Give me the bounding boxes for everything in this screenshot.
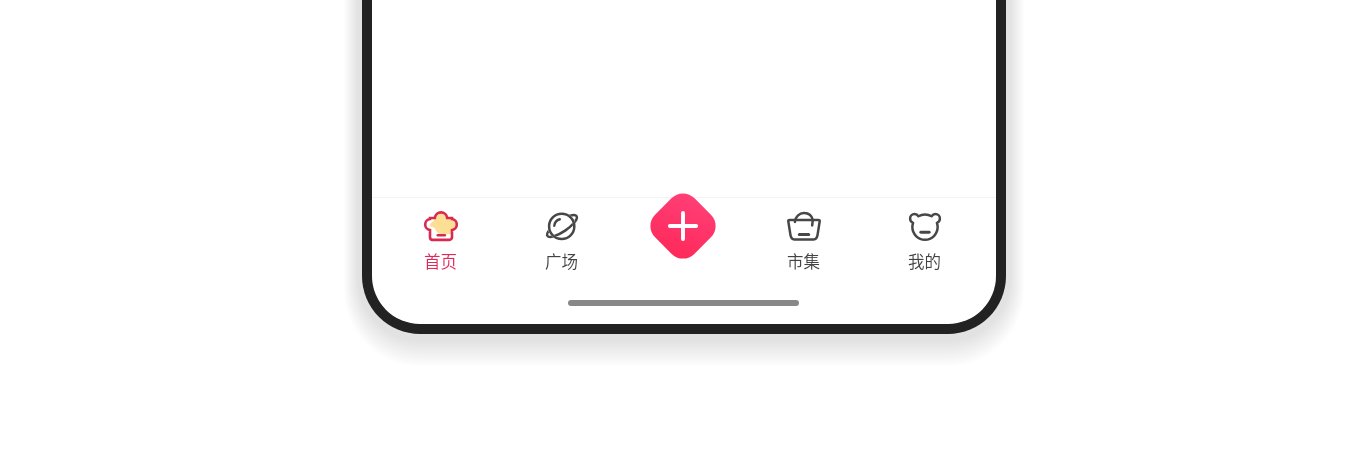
button[interactable]: 广场 bbox=[501, 198, 622, 273]
staticText: 市集 bbox=[787, 249, 820, 273]
staticText: 我的 bbox=[908, 249, 941, 273]
button[interactable]: 首页 bbox=[380, 198, 501, 273]
button[interactable]: 市集 bbox=[743, 198, 864, 273]
button[interactable]: 我的 bbox=[864, 198, 985, 273]
button[interactable]: Add recipe bbox=[646, 189, 720, 263]
staticText: 首页 bbox=[424, 249, 457, 273]
staticText: 广场 bbox=[545, 249, 578, 273]
